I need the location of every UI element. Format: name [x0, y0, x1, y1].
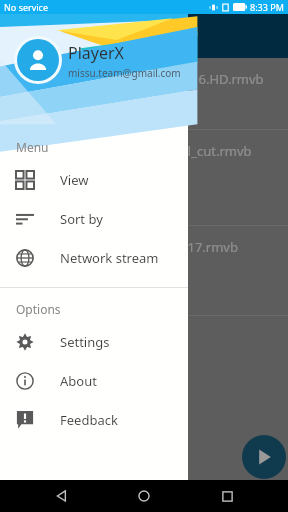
- staticText: PlayerX: [68, 42, 124, 64]
- button[interactable]: Movie.2016.HD.rmvb: [0, 58, 288, 130]
- button[interactable]: Back: [41, 480, 83, 512]
- button[interactable]: Sort by: [0, 199, 188, 238]
- button[interactable]: Network stream: [0, 238, 188, 277]
- staticText: About: [60, 372, 97, 390]
- staticText: Options: [16, 301, 61, 317]
- staticText: Network stream: [60, 249, 159, 267]
- button[interactable]: Episode.17.rmvb: [0, 226, 288, 316]
- staticText: Settings: [60, 333, 110, 351]
- staticText: Episode.17.rmvb: [136, 238, 238, 256]
- button[interactable]: Recent apps: [206, 480, 248, 512]
- staticText: No service: [4, 1, 49, 13]
- staticText: Sort by: [60, 210, 103, 228]
- button[interactable]: About: [0, 361, 188, 400]
- staticText: Menu: [16, 139, 49, 155]
- button[interactable]: [0, 14, 288, 58]
- button[interactable]: Play: [242, 435, 286, 479]
- staticText: View: [60, 171, 89, 189]
- staticText: missu.team@gmail.com: [68, 66, 181, 80]
- button[interactable]: Feedback: [0, 400, 188, 439]
- button[interactable]: View: [0, 160, 188, 199]
- staticText: Movie.2016.HD.rmvb: [136, 70, 264, 88]
- button[interactable]: Profile picture: [14, 36, 62, 84]
- button[interactable]: Settings: [0, 322, 188, 361]
- staticText: 8:33 PM: [250, 1, 284, 13]
- button[interactable]: Clip_final_cut.rmvb: [0, 130, 288, 226]
- staticText: Clip_final_cut.rmvb: [136, 142, 252, 160]
- button[interactable]: Home: [123, 480, 165, 512]
- staticText: Feedback: [60, 411, 118, 429]
